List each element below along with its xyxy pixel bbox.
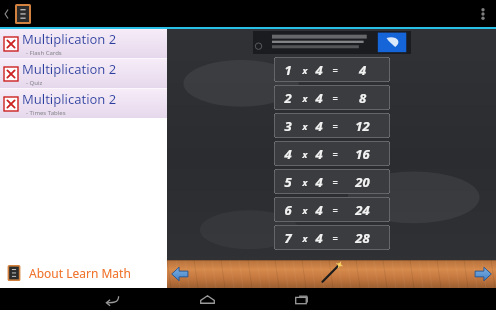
staticText: x (300, 120, 310, 132)
button[interactable]: Back (95, 288, 129, 310)
staticText: 6 (281, 201, 295, 219)
staticText: = (330, 232, 340, 244)
staticText: 4 (313, 89, 325, 107)
staticText: x (300, 64, 310, 76)
button[interactable]: Recents (285, 288, 319, 310)
staticText: 4 (313, 61, 325, 79)
button[interactable]: Multiplication 2 (0, 59, 167, 88)
staticText: x (300, 204, 310, 216)
button[interactable]: About Learn Math (0, 258, 167, 288)
button[interactable]: Home (190, 288, 224, 310)
button[interactable]: Advertisement (253, 31, 411, 54)
staticText: Multiplication 2 (22, 60, 117, 78)
button[interactable]: 1 (274, 57, 390, 82)
button[interactable]: More options (470, 0, 496, 27)
staticText: 4 (342, 61, 383, 79)
staticText: = (330, 120, 340, 132)
staticText: 2 (281, 89, 295, 107)
staticText: 4 (313, 145, 325, 163)
staticText: 20 (342, 173, 383, 191)
staticText: 3 (281, 117, 295, 135)
staticText: 4 (281, 145, 295, 163)
button[interactable]: Multiplication 2 (0, 29, 167, 58)
button[interactable]: 7 (274, 225, 390, 250)
staticText: x (300, 176, 310, 188)
button[interactable]: 2 (274, 85, 390, 110)
staticText: 16 (342, 145, 383, 163)
staticText: 24 (342, 201, 383, 219)
staticText: About Learn Math (29, 265, 131, 281)
staticText: 4 (313, 117, 325, 135)
staticText: = (330, 64, 340, 76)
staticText: 1 (281, 61, 295, 79)
staticText: - Times Tables (26, 109, 66, 117)
staticText: - Quiz (26, 79, 43, 87)
staticText: = (330, 204, 340, 216)
staticText: 12 (342, 117, 383, 135)
staticText: 4 (313, 173, 325, 191)
staticText: x (300, 92, 310, 104)
staticText: 28 (342, 229, 383, 247)
button[interactable]: Previous (169, 263, 191, 285)
button[interactable]: Next (472, 263, 494, 285)
staticText: 4 (313, 229, 325, 247)
staticText: 7 (281, 229, 295, 247)
button[interactable]: Multiplication 2 (0, 89, 167, 118)
staticText: = (330, 176, 340, 188)
staticText: - Flash Cards (26, 49, 62, 57)
staticText: Multiplication 2 (22, 90, 117, 108)
staticText: 4 (313, 201, 325, 219)
staticText: Multiplication 2 (22, 30, 117, 48)
staticText: x (300, 232, 310, 244)
staticText: = (330, 148, 340, 160)
staticText: = (330, 92, 340, 104)
button[interactable]: 4 (274, 141, 390, 166)
button[interactable]: 3 (274, 113, 390, 138)
button[interactable]: App icon (12, 3, 34, 25)
button[interactable]: 6 (274, 197, 390, 222)
staticText: x (300, 148, 310, 160)
staticText: 5 (281, 173, 295, 191)
staticText: 8 (342, 89, 383, 107)
button[interactable]: 5 (274, 169, 390, 194)
